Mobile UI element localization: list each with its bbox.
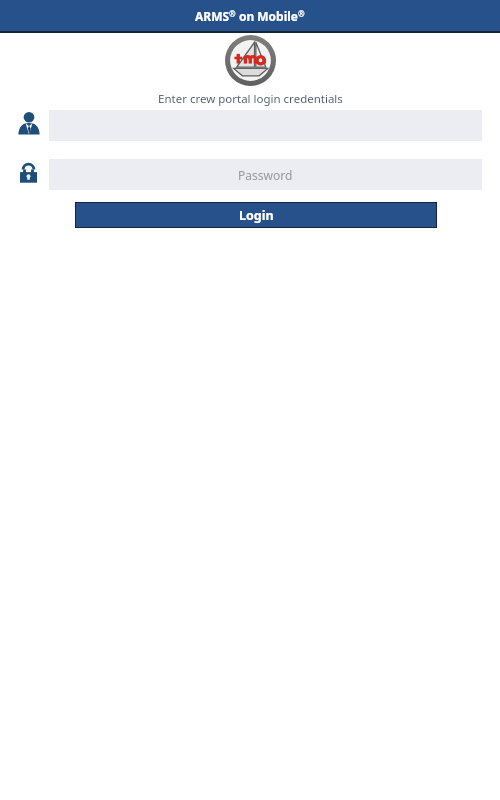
staticText: Login: [239, 207, 274, 224]
staticText: ARMS® on Mobile®: [195, 8, 305, 24]
staticText: Enter crew portal login credentials: [158, 91, 343, 107]
button[interactable]: Password: [49, 159, 482, 190]
other: Password: [17, 162, 40, 185]
button[interactable]: Login: [76, 203, 436, 227]
other: User name: [16, 111, 42, 137]
staticText: Password: [238, 167, 293, 183]
